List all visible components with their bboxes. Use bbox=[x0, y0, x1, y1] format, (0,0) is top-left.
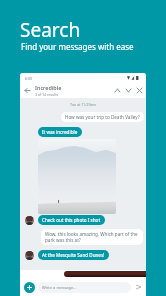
staticText: Tue at 11:29am bbox=[70, 102, 96, 107]
button[interactable]: Check out this photo I shot bbox=[38, 215, 105, 225]
button[interactable]: How was your trip to Death Valley? bbox=[61, 112, 144, 122]
staticText: How was your trip to Death Valley? bbox=[65, 114, 140, 120]
staticText: Incredible bbox=[35, 84, 62, 91]
button[interactable]: At the Mesquite Sand Dunes! bbox=[38, 250, 109, 260]
button[interactable]: Add attachment bbox=[24, 282, 35, 293]
button[interactable]: It was incredible bbox=[38, 127, 82, 137]
staticText: Check out this photo I shot bbox=[42, 217, 101, 223]
button[interactable]: Send bbox=[133, 282, 143, 292]
staticText: 6:00 bbox=[25, 76, 32, 81]
button[interactable]: Back bbox=[22, 85, 33, 96]
staticText: Search bbox=[20, 17, 81, 43]
staticText: It was incredible bbox=[42, 129, 78, 135]
staticText: Find your messages with ease bbox=[21, 41, 134, 52]
button[interactable]: Close search bbox=[134, 85, 145, 96]
button[interactable]: Previous result bbox=[112, 85, 123, 96]
staticText: 3 of 14 results bbox=[35, 92, 59, 97]
staticText: At the Mesquite Sand Dunes! bbox=[42, 252, 105, 258]
button[interactable]: Next result bbox=[123, 85, 134, 96]
button[interactable]: Write a message... bbox=[38, 282, 131, 293]
staticText: Write a message... bbox=[42, 285, 77, 290]
staticText: Wow, this looks amazing. Which part of t… bbox=[45, 231, 139, 243]
button[interactable]: Wow, this looks amazing. Which part of t… bbox=[41, 229, 143, 245]
